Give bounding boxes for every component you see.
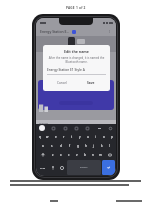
button[interactable]: a (39, 142, 47, 149)
staticText: g (77, 144, 79, 148)
button[interactable]: More (97, 126, 102, 131)
button[interactable]: Save (76, 79, 106, 87)
button[interactable]: p (108, 133, 115, 140)
button[interactable]: d (57, 142, 65, 149)
staticText: Energy Station E... (40, 29, 70, 34)
staticText: o (103, 135, 105, 139)
button[interactable] (38, 80, 114, 110)
staticText: Save (87, 81, 95, 85)
button[interactable]: x (57, 151, 64, 158)
button[interactable]: v (73, 151, 80, 158)
staticText: q (39, 135, 41, 139)
staticText: t (71, 135, 73, 139)
staticText: c (68, 153, 70, 157)
button[interactable]: ?123 (37, 160, 48, 175)
staticText: p (111, 135, 113, 139)
staticText: f (69, 144, 71, 148)
staticText: u (87, 135, 89, 139)
staticText: d (60, 144, 62, 148)
button[interactable]: c (65, 151, 72, 158)
button[interactable]: Enter (102, 160, 115, 175)
staticText: m (99, 153, 102, 157)
staticText: y (79, 135, 81, 139)
button[interactable]: Space (67, 160, 101, 175)
button[interactable]: u (84, 133, 91, 140)
button[interactable]: q (37, 133, 43, 140)
staticText: x (60, 153, 62, 157)
staticText: k (101, 144, 103, 148)
staticText: n (92, 153, 94, 157)
staticText: v (76, 153, 78, 157)
staticText: l (109, 144, 110, 148)
staticText: i (95, 135, 96, 139)
button[interactable]: r (60, 133, 67, 140)
staticText: j (93, 144, 94, 148)
staticText: Energy Station E1 Style A (47, 68, 85, 72)
button[interactable]: Emoji (58, 160, 66, 175)
staticText: b (84, 153, 86, 157)
staticText: English (80, 166, 88, 169)
staticText: After the name is changed, it is named t… (47, 56, 106, 64)
button[interactable]: Cancel (47, 79, 76, 87)
staticText: s (51, 144, 53, 148)
button[interactable]: Keyboard tool 3 (74, 126, 79, 131)
staticText: z (52, 153, 54, 157)
button[interactable]: More options (107, 29, 112, 34)
button[interactable]: t (68, 133, 75, 140)
button[interactable]: Shift (37, 151, 48, 158)
button[interactable]: g (74, 142, 81, 149)
button[interactable]: Edit name (72, 30, 76, 34)
button[interactable]: Keyboard settings (108, 126, 113, 131)
button[interactable]: o (100, 133, 107, 140)
staticText: ?123 (40, 166, 46, 169)
button[interactable]: z (49, 151, 56, 158)
button[interactable]: e (52, 133, 59, 140)
button[interactable]: m (97, 151, 104, 158)
button[interactable]: Keyboard tool 2 (63, 126, 68, 131)
staticText: h (85, 144, 87, 148)
staticText: a (42, 144, 44, 148)
button[interactable]: j (90, 142, 97, 149)
staticText: Cancel (57, 81, 67, 85)
button[interactable]: l (106, 142, 113, 149)
button[interactable]: y (76, 133, 83, 140)
button[interactable]: h (82, 142, 89, 149)
button[interactable]: w (44, 133, 51, 140)
button[interactable]: Keyboard assistant (39, 125, 45, 131)
button[interactable]: Voice input (49, 160, 57, 175)
staticText: Settings (39, 121, 49, 124)
staticText: w (46, 135, 49, 139)
staticText: r (63, 135, 65, 139)
staticText: Edit the name (64, 49, 89, 54)
button[interactable]: Keyboard tool 1 (51, 126, 56, 131)
button[interactable]: k (98, 142, 105, 149)
button[interactable]: Backspace (105, 151, 115, 158)
button[interactable]: f (66, 142, 73, 149)
staticText: e (55, 135, 57, 139)
button[interactable]: i (92, 133, 99, 140)
button[interactable]: b (81, 151, 88, 158)
staticText: PAGE 1 of 2 (66, 6, 86, 10)
button[interactable]: Keyboard tool 4 (85, 126, 90, 131)
button[interactable]: s (48, 142, 56, 149)
button[interactable]: n (89, 151, 96, 158)
